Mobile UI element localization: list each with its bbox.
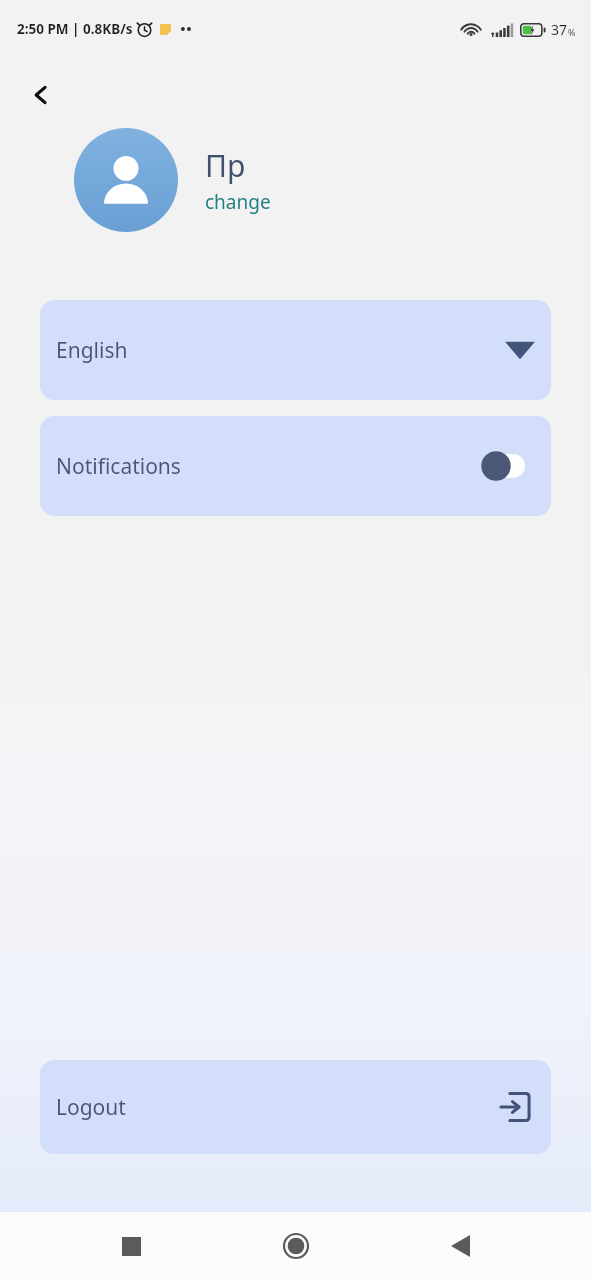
button[interactable]: Back [427,1213,493,1279]
staticText: 37 [551,20,568,39]
staticText: English [56,336,128,365]
staticText: Пр [205,145,246,186]
button[interactable]: Profile photo [74,128,178,232]
button[interactable]: Notifications toggle [481,451,531,481]
button[interactable]: Back [20,74,62,116]
button[interactable]: change [205,189,271,215]
button[interactable]: Notifications [40,416,551,516]
button[interactable]: Logout [40,1060,551,1154]
button[interactable]: Home [263,1213,329,1279]
staticText: % [568,26,576,38]
button[interactable]: English [40,300,551,400]
staticText: Notifications [56,452,181,481]
button[interactable]: Recent apps [98,1213,164,1279]
staticText: 2:50 PM | 0.8KB/s [17,20,133,38]
staticText: change [205,189,271,215]
staticText: Logout [56,1093,126,1122]
